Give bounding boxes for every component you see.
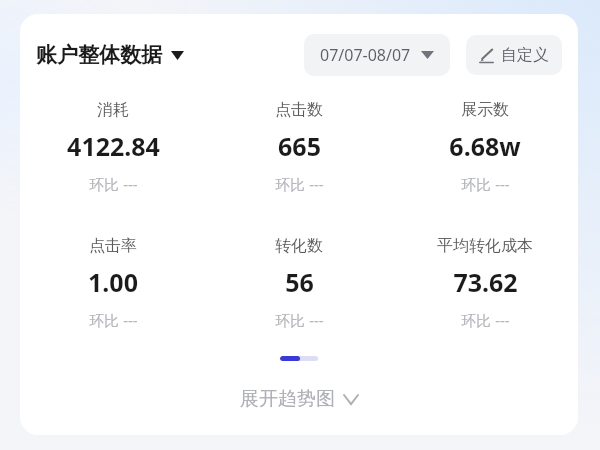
button[interactable]: 消耗	[20, 98, 206, 196]
staticText: 消耗	[97, 100, 129, 120]
staticText: 平均转化成本	[437, 236, 533, 256]
button[interactable]: 07/07-08/07	[304, 34, 450, 76]
staticText: 4122.84	[67, 129, 160, 163]
staticText: 点击数	[275, 100, 323, 120]
staticText: 1.00	[88, 265, 138, 299]
staticText: 环比 ---	[275, 310, 324, 330]
staticText: 665	[278, 129, 321, 163]
button[interactable]: 点击率	[20, 234, 206, 332]
staticText: 环比 ---	[461, 174, 510, 194]
staticText: 73.62	[453, 265, 518, 299]
staticText: 账户整体数据	[36, 42, 162, 68]
button[interactable]: 展示数	[392, 98, 578, 196]
staticText: 环比 ---	[275, 174, 324, 194]
button[interactable]: 转化数	[206, 234, 392, 332]
staticText: 07/07-08/07	[320, 44, 411, 66]
staticText: 展示数	[461, 100, 509, 120]
button[interactable]: 展开趋势图	[20, 387, 578, 411]
staticText: 环比 ---	[89, 174, 138, 194]
staticText: 环比 ---	[461, 310, 510, 330]
other: Customize	[479, 48, 494, 63]
button[interactable]: Customize	[466, 35, 562, 75]
staticText: 56	[285, 265, 314, 299]
button[interactable]: 平均转化成本	[392, 234, 578, 332]
staticText: 展开趋势图	[240, 387, 335, 411]
button[interactable]: 点击数	[206, 98, 392, 196]
staticText: 6.68w	[449, 129, 521, 163]
button[interactable]: 账户整体数据	[36, 42, 184, 68]
staticText: 环比 ---	[89, 310, 138, 330]
staticText: 自定义	[501, 45, 549, 65]
staticText: 转化数	[275, 236, 323, 256]
staticText: 点击率	[89, 236, 137, 256]
